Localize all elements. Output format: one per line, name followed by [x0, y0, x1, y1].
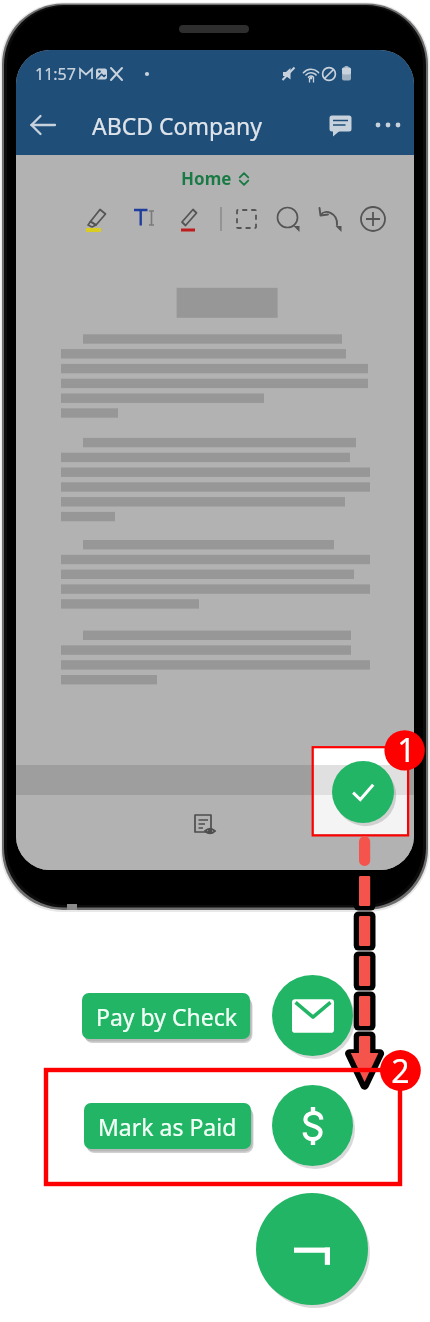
button[interactable]: Add: [356, 202, 390, 236]
button[interactable]: More options: [364, 101, 412, 149]
button[interactable]: Text: [128, 202, 162, 236]
button[interactable]: Pen: [174, 202, 208, 236]
button[interactable]: Pay by Check: [82, 993, 250, 1039]
staticText: 11:57: [35, 63, 76, 85]
staticText: Pay by Check: [96, 1001, 237, 1032]
staticText: Mark as Paid: [98, 1111, 237, 1142]
button[interactable]: Home: [181, 167, 250, 190]
button[interactable]: Comments: [316, 101, 364, 149]
staticText: 1: [397, 728, 416, 772]
button[interactable]: Shape: [272, 202, 306, 236]
button[interactable]: More actions: [256, 1193, 368, 1305]
button[interactable]: Done: [332, 761, 394, 823]
button[interactable]: Back: [16, 98, 70, 152]
staticText: ABCD Company: [92, 110, 262, 141]
button[interactable]: Pay by Check: [272, 975, 353, 1056]
button[interactable]: Mark as Paid: [84, 1103, 251, 1149]
button[interactable]: Mark as Paid: [272, 1085, 353, 1166]
button[interactable]: Document view: [186, 806, 226, 846]
button[interactable]: Highlight: [82, 202, 116, 236]
button[interactable]: Select: [230, 202, 264, 236]
staticText: Home: [181, 167, 232, 190]
staticText: 2: [391, 1049, 410, 1093]
button[interactable]: Undo: [314, 202, 348, 236]
